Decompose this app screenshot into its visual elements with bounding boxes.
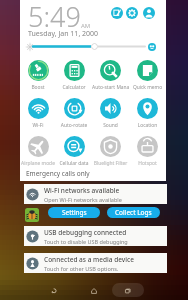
button[interactable]: Connected as a media device [24, 253, 167, 273]
button[interactable]: Brightness level [91, 43, 98, 50]
button[interactable]: Bluelight Filter [92, 136, 129, 168]
staticText: Touch for other USB options. [44, 265, 119, 272]
staticText: USB debugging connected [44, 228, 127, 237]
button[interactable]: Sound [92, 98, 129, 130]
staticText: Auto-start Mana.. [92, 84, 129, 91]
staticText: Airplane mode [20, 160, 56, 167]
button[interactable]: Hotspot [129, 136, 166, 168]
button[interactable]: User profile [143, 7, 155, 19]
button[interactable]: Location [129, 98, 166, 130]
button[interactable]: USB debugging connected [24, 226, 167, 246]
staticText: 5:49 [28, 0, 81, 35]
staticText: Collect Logs [115, 208, 152, 217]
staticText: Quick memo [129, 84, 166, 91]
staticText: Wi-Fi networks available [44, 186, 120, 195]
staticText: Touch to disable USB debugging [44, 238, 128, 245]
button[interactable]: Home [86, 283, 102, 299]
button[interactable]: Auto-rotate [56, 98, 92, 130]
button[interactable]: Calculator [56, 60, 92, 92]
button[interactable]: Brightness [25, 42, 35, 52]
staticText: Sound [92, 122, 129, 129]
staticText: Bluelight Filter [92, 160, 129, 167]
button[interactable]: Boost [20, 60, 56, 92]
staticText: Tuesday, Jan 11, 2000 [28, 29, 99, 39]
button[interactable]: Airplane mode [20, 136, 56, 168]
button[interactable]: Settings [48, 207, 100, 218]
button[interactable]: Wi-Fi networks available [24, 184, 167, 204]
button[interactable]: Wi-Fi [20, 98, 56, 130]
staticText: Emergency calls only [26, 169, 90, 178]
button[interactable]: Auto-start Mana.. [92, 60, 129, 92]
button[interactable]: Screenshot [111, 7, 123, 19]
button[interactable]: Collect Logs [107, 207, 160, 218]
staticText: Open Wi-Fi networks available [44, 196, 122, 203]
button[interactable]: Auto brightness [148, 43, 156, 51]
staticText: Wi-Fi [20, 122, 56, 129]
staticText: Location [129, 122, 166, 129]
button[interactable]: Quick memo [129, 60, 166, 92]
staticText: Calculator [56, 84, 92, 91]
button[interactable]: Cellular data [56, 136, 92, 168]
button[interactable]: Recent apps [120, 283, 136, 299]
staticText: Boost [20, 84, 56, 91]
button[interactable]: Quick settings [126, 7, 138, 19]
staticText: Hotspot [129, 160, 166, 167]
staticText: Settings [62, 208, 87, 217]
staticText: Cellular data [56, 160, 92, 167]
staticText: Auto-rotate [56, 122, 92, 129]
button[interactable]: Debug app [25, 208, 39, 222]
button[interactable]: Back [46, 283, 62, 299]
staticText: AM [81, 22, 91, 30]
staticText: Connected as a media device [44, 255, 134, 264]
